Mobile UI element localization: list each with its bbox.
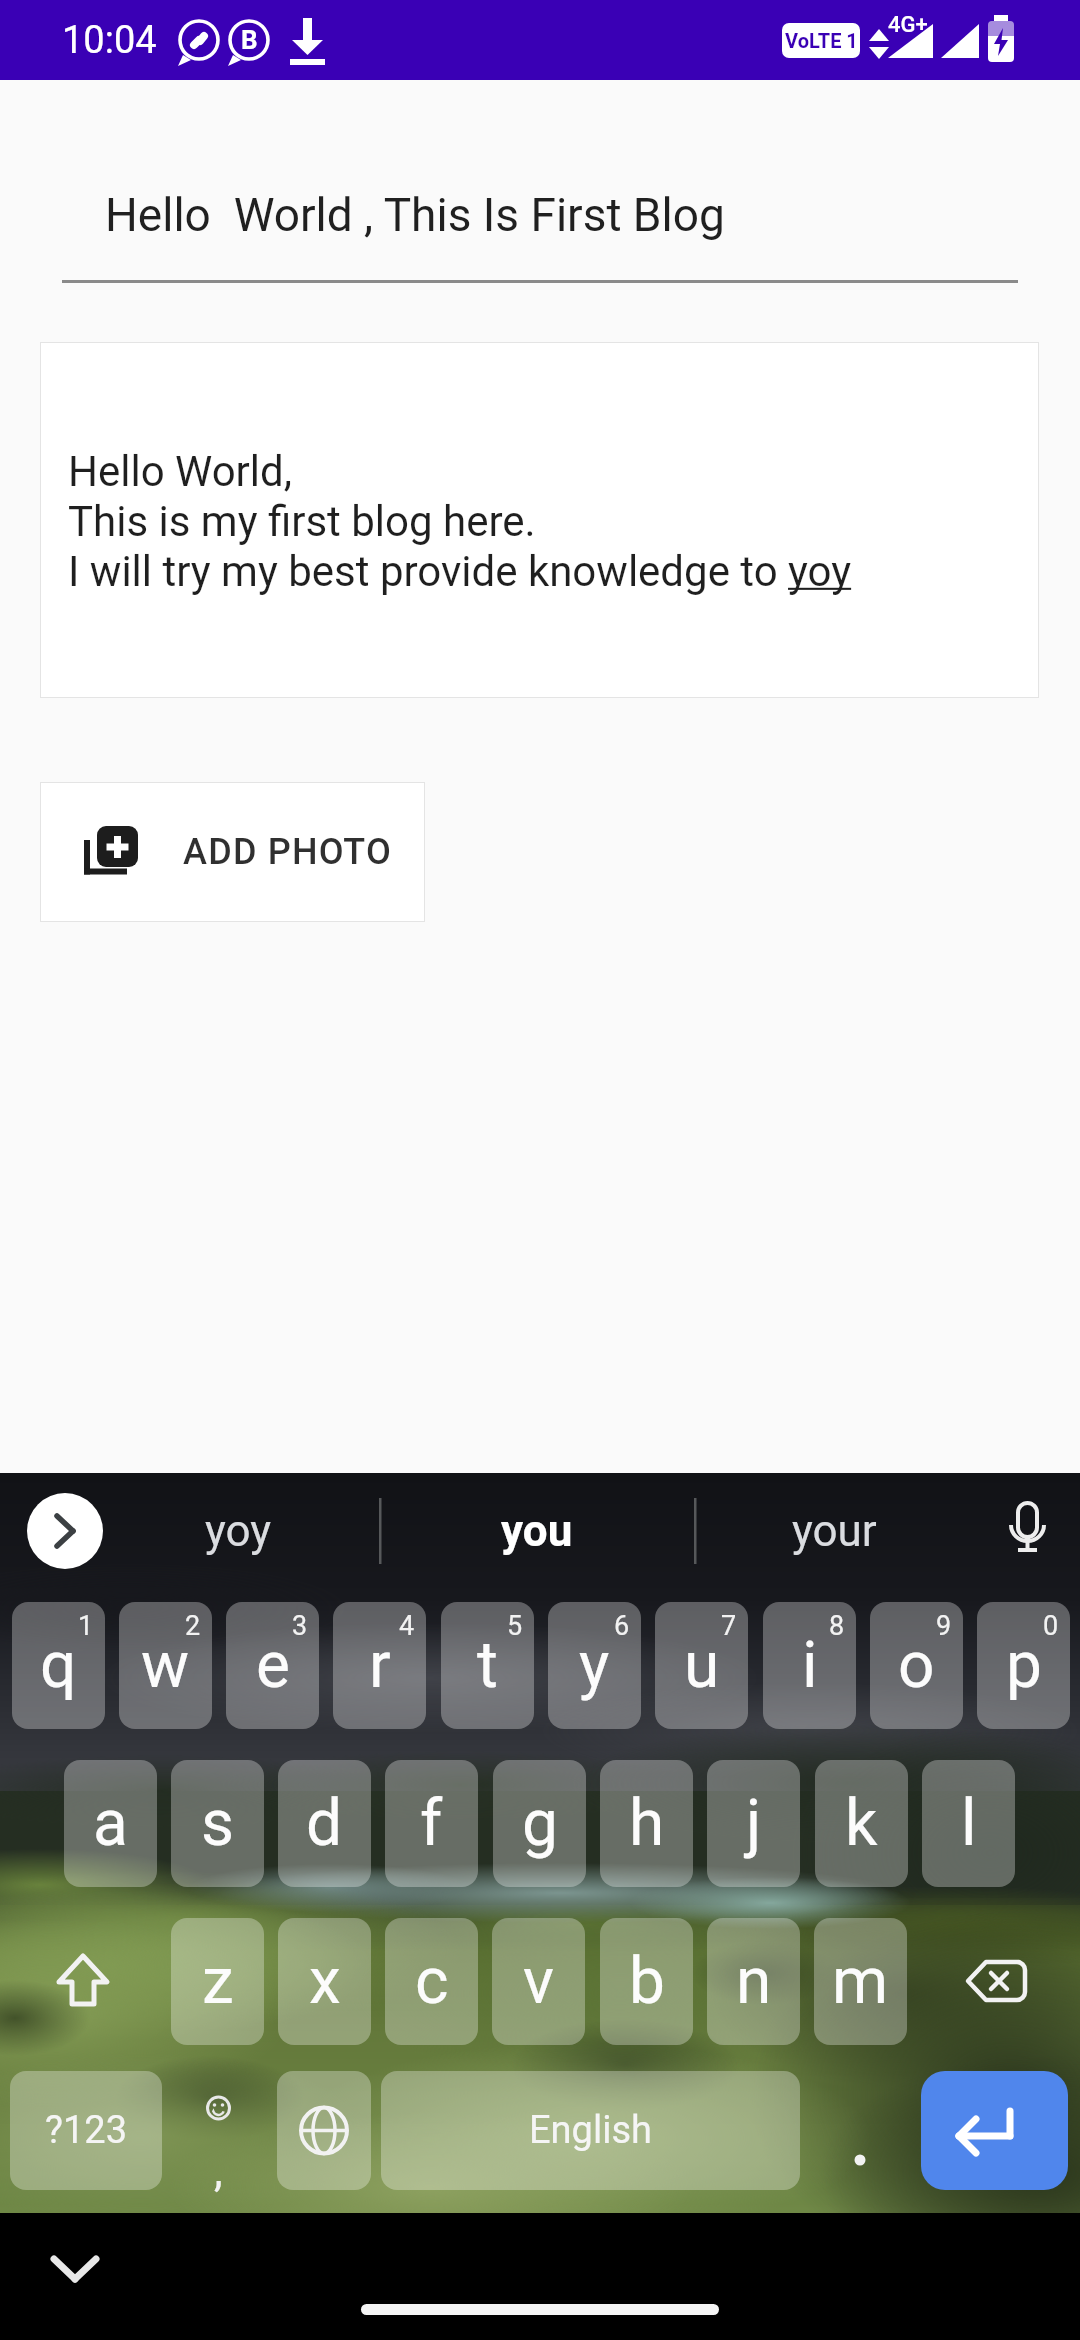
button[interactable]: w <box>119 1602 212 1729</box>
staticText: your <box>792 1505 877 1557</box>
button[interactable]: English <box>381 2071 800 2190</box>
staticText: 4 <box>399 1610 415 1642</box>
staticText: r <box>369 1628 391 1703</box>
button[interactable]: k <box>815 1760 908 1887</box>
staticText: g <box>522 1786 558 1861</box>
staticText: j <box>746 1786 762 1861</box>
button[interactable]: v <box>492 1918 585 2045</box>
button[interactable] <box>941 1918 1051 2045</box>
staticText: z <box>202 1944 234 2019</box>
button[interactable]: j <box>707 1760 800 1887</box>
staticText: 10:04 <box>62 18 157 63</box>
button[interactable]: q <box>12 1602 105 1729</box>
staticText: h <box>629 1786 665 1861</box>
button[interactable]: i <box>763 1602 856 1729</box>
staticText: y <box>579 1628 610 1703</box>
staticText: , <box>214 2145 223 2197</box>
button[interactable]: yoy <box>120 1493 356 1569</box>
staticText: p <box>1006 1628 1042 1703</box>
staticText: e <box>256 1628 290 1703</box>
button[interactable] <box>810 2071 906 2190</box>
button[interactable]: Hello World , This Is First Blog <box>62 170 1018 284</box>
staticText: o <box>898 1628 935 1703</box>
button[interactable]: r <box>333 1602 426 1729</box>
staticText: ?123 <box>45 2108 128 2153</box>
staticText: v <box>523 1944 554 2019</box>
button[interactable]: , <box>171 2071 266 2190</box>
button[interactable]: d <box>278 1760 371 1887</box>
button[interactable]: ADD PHOTO <box>40 782 425 922</box>
button[interactable]: h <box>600 1760 693 1887</box>
staticText: ADD PHOTO <box>183 831 392 873</box>
button[interactable]: f <box>385 1760 478 1887</box>
staticText: i <box>802 1628 818 1703</box>
staticText: 9 <box>936 1610 952 1642</box>
button[interactable]: Hello World, This is my first blog here.… <box>40 342 1039 698</box>
staticText: 3 <box>292 1610 308 1642</box>
button[interactable]: x <box>278 1918 371 2045</box>
button[interactable]: n <box>707 1918 800 2045</box>
button[interactable]: o <box>870 1602 963 1729</box>
button[interactable] <box>28 1918 138 2045</box>
button[interactable]: you <box>400 1493 674 1569</box>
staticText: B <box>241 25 258 55</box>
button[interactable]: l <box>922 1760 1015 1887</box>
button[interactable]: a <box>64 1760 157 1887</box>
button[interactable]: ?123 <box>10 2071 162 2190</box>
button[interactable]: s <box>171 1760 264 1887</box>
staticText: 8 <box>829 1610 845 1642</box>
staticText: 4G+ <box>888 12 928 38</box>
button[interactable]: y <box>548 1602 641 1729</box>
staticText: w <box>141 1628 190 1703</box>
staticText: English <box>529 2108 652 2153</box>
staticText: VoLTE 1 <box>785 29 858 52</box>
staticText: d <box>306 1786 343 1861</box>
button[interactable]: u <box>655 1602 748 1729</box>
button[interactable]: e <box>226 1602 319 1729</box>
button[interactable] <box>40 2238 110 2308</box>
button[interactable] <box>277 2071 371 2190</box>
staticText: 0 <box>1043 1610 1059 1642</box>
staticText: you <box>501 1505 573 1557</box>
staticText: m <box>832 1944 889 2019</box>
button[interactable]: p <box>977 1602 1070 1729</box>
staticText: f <box>420 1786 443 1861</box>
button[interactable]: g <box>493 1760 586 1887</box>
staticText: l <box>961 1786 977 1861</box>
staticText: 5 <box>507 1610 523 1642</box>
button[interactable]: c <box>385 1918 478 2045</box>
button[interactable]: z <box>171 1918 264 2045</box>
staticText: s <box>201 1786 235 1861</box>
button[interactable]: b <box>600 1918 693 2045</box>
staticText: Hello World , This Is First Blog <box>105 188 725 242</box>
staticText: q <box>40 1628 77 1703</box>
staticText: x <box>309 1944 341 2019</box>
staticText: n <box>736 1944 772 2019</box>
staticText: yoy <box>205 1505 272 1557</box>
staticText: b <box>629 1944 665 2019</box>
staticText: k <box>845 1786 878 1861</box>
staticText: u <box>684 1628 720 1703</box>
button[interactable]: t <box>441 1602 534 1729</box>
staticText: 2 <box>185 1610 201 1642</box>
staticText: 6 <box>614 1610 630 1642</box>
button[interactable]: m <box>814 1918 907 2045</box>
staticText: a <box>93 1786 128 1861</box>
button[interactable] <box>921 2071 1068 2190</box>
button[interactable]: your <box>716 1493 952 1569</box>
button[interactable] <box>27 1493 103 1569</box>
staticText: t <box>477 1628 498 1703</box>
staticText: c <box>415 1944 449 2019</box>
staticText: 1 <box>78 1610 94 1642</box>
staticText: Hello World, This is my first blog here.… <box>68 447 852 596</box>
staticText: 7 <box>721 1610 737 1642</box>
